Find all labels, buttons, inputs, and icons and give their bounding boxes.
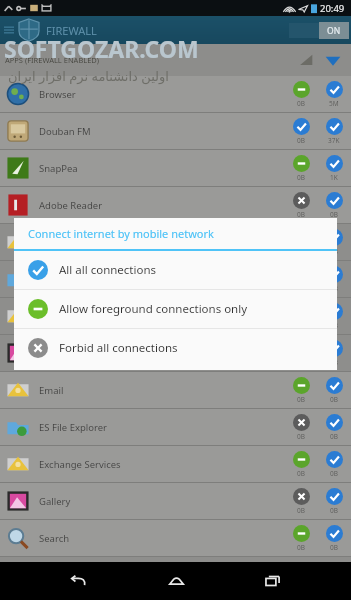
button[interactable]: Home: [157, 562, 195, 600]
staticText: 0B: [330, 284, 338, 293]
button[interactable]: Search: [0, 520, 351, 557]
staticText: Douban FM: [39, 125, 91, 138]
staticText: 5M: [329, 99, 339, 108]
button[interactable]: Toggle connection rule: [290, 192, 312, 219]
button[interactable]: Toggle connection rule: [290, 377, 312, 404]
staticText: 0B: [330, 543, 338, 552]
staticText: 37K: [328, 136, 340, 145]
staticText: 0B: [297, 284, 305, 293]
button[interactable]: All all connections: [14, 251, 337, 289]
staticText: Search: [39, 532, 70, 545]
button[interactable]: Toggle connection rule: [323, 229, 345, 256]
button[interactable]: Toggle connection rule: [290, 229, 312, 256]
button[interactable]: Douban FM: [0, 113, 351, 150]
button[interactable]: Toggle connection rule: [290, 414, 312, 441]
staticText: 0B: [330, 469, 338, 478]
button[interactable]: Toggle connection rule: [290, 155, 312, 182]
staticText: Gallery: [39, 495, 71, 508]
button[interactable]: Toggle connection rule: [290, 118, 312, 145]
button[interactable]: Forbid all connections: [14, 329, 337, 367]
staticText: 0B: [330, 506, 338, 515]
button[interactable]: SnapPea: [0, 150, 351, 187]
staticText: 0B: [330, 432, 338, 441]
button[interactable]: Mobile data rules: [297, 51, 315, 69]
button[interactable]: Toggle connection rule: [323, 118, 345, 145]
button[interactable]: Gallery: [0, 335, 351, 372]
button[interactable]: Toggle connection rule: [290, 451, 312, 478]
staticText: 0B: [330, 210, 338, 219]
button[interactable]: Toggle connection rule: [323, 155, 345, 182]
button[interactable]: Toggle connection rule: [323, 192, 345, 219]
staticText: Email: [39, 236, 64, 249]
staticText: 0B: [297, 247, 305, 256]
staticText: 0B: [330, 358, 338, 367]
staticText: ON: [327, 25, 341, 37]
button[interactable]: Toggle connection rule: [290, 303, 312, 330]
staticText: 0B: [297, 173, 305, 182]
button[interactable]: Toggle connection rule: [323, 81, 345, 108]
staticText: Allow foreground connections only: [59, 301, 248, 317]
staticText: All all connections: [59, 262, 157, 278]
staticText: ES File Explorer: [39, 421, 107, 434]
button[interactable]: Firewall on off toggle: [289, 22, 349, 39]
staticText: Adobe Reader: [39, 199, 103, 212]
button[interactable]: Toggle connection rule: [323, 488, 345, 515]
button[interactable]: Back: [59, 562, 97, 600]
staticText: Exchange Services: [39, 458, 121, 471]
staticText: Gallery: [39, 347, 71, 360]
staticText: 0B: [297, 469, 305, 478]
staticText: 0B: [297, 321, 305, 330]
button[interactable]: ES File Explorer: [0, 409, 351, 446]
staticText: 0B: [297, 543, 305, 552]
button[interactable]: Exchange Services: [0, 446, 351, 483]
button[interactable]: Toggle connection rule: [290, 266, 312, 293]
button[interactable]: Toggle connection rule: [323, 377, 345, 404]
button[interactable]: Toggle connection rule: [290, 525, 312, 552]
staticText: ES File Explorer: [39, 273, 107, 286]
button[interactable]: Toggle connection rule: [290, 81, 312, 108]
button[interactable]: Wi-Fi rules: [323, 50, 343, 70]
button[interactable]: Gallery: [0, 483, 351, 520]
button[interactable]: Toggle connection rule: [323, 303, 345, 330]
staticText: 0B: [330, 247, 338, 256]
staticText: اولین دانشنامه نرم افزار ایران: [8, 67, 169, 85]
button[interactable]: Browser: [0, 76, 351, 113]
button[interactable]: Toggle connection rule: [323, 414, 345, 441]
staticText: 0B: [297, 395, 305, 404]
button[interactable]: Toggle connection rule: [323, 451, 345, 478]
button[interactable]: Adobe Reader: [0, 187, 351, 224]
staticText: Forbid all connections: [59, 340, 178, 356]
staticText: 0B: [330, 395, 338, 404]
staticText: Email: [39, 384, 64, 397]
staticText: 20:49: [320, 2, 345, 15]
staticText: 0B: [297, 136, 305, 145]
staticText: APPS (FIREWALL ENABLED): [5, 55, 100, 65]
button[interactable]: Toggle connection rule: [323, 340, 345, 367]
button[interactable]: ES File Explorer: [0, 261, 351, 298]
staticText: 0B: [297, 432, 305, 441]
button[interactable]: Recent apps: [254, 562, 292, 600]
button[interactable]: Open navigation menu: [2, 23, 16, 37]
staticText: 1K: [330, 173, 338, 182]
staticText: SnapPea: [39, 162, 78, 175]
button[interactable]: Exchange Services: [0, 298, 351, 335]
button[interactable]: Allow foreground connections only: [14, 290, 337, 328]
button[interactable]: Toggle connection rule: [290, 488, 312, 515]
staticText: Exchange Services: [39, 310, 121, 323]
staticText: Connect internet by mobile network: [28, 226, 214, 241]
staticText: 0B: [297, 506, 305, 515]
staticText: 0B: [297, 99, 305, 108]
button[interactable]: Email: [0, 372, 351, 409]
staticText: 0B: [330, 321, 338, 330]
staticText: FIREWALL: [46, 23, 97, 38]
button[interactable]: Toggle connection rule: [323, 525, 345, 552]
button[interactable]: Email: [0, 224, 351, 261]
button[interactable]: Toggle connection rule: [323, 266, 345, 293]
staticText: SOFTGOZAR.COM: [4, 33, 199, 64]
staticText: 0B: [297, 210, 305, 219]
staticText: Browser: [39, 88, 76, 101]
